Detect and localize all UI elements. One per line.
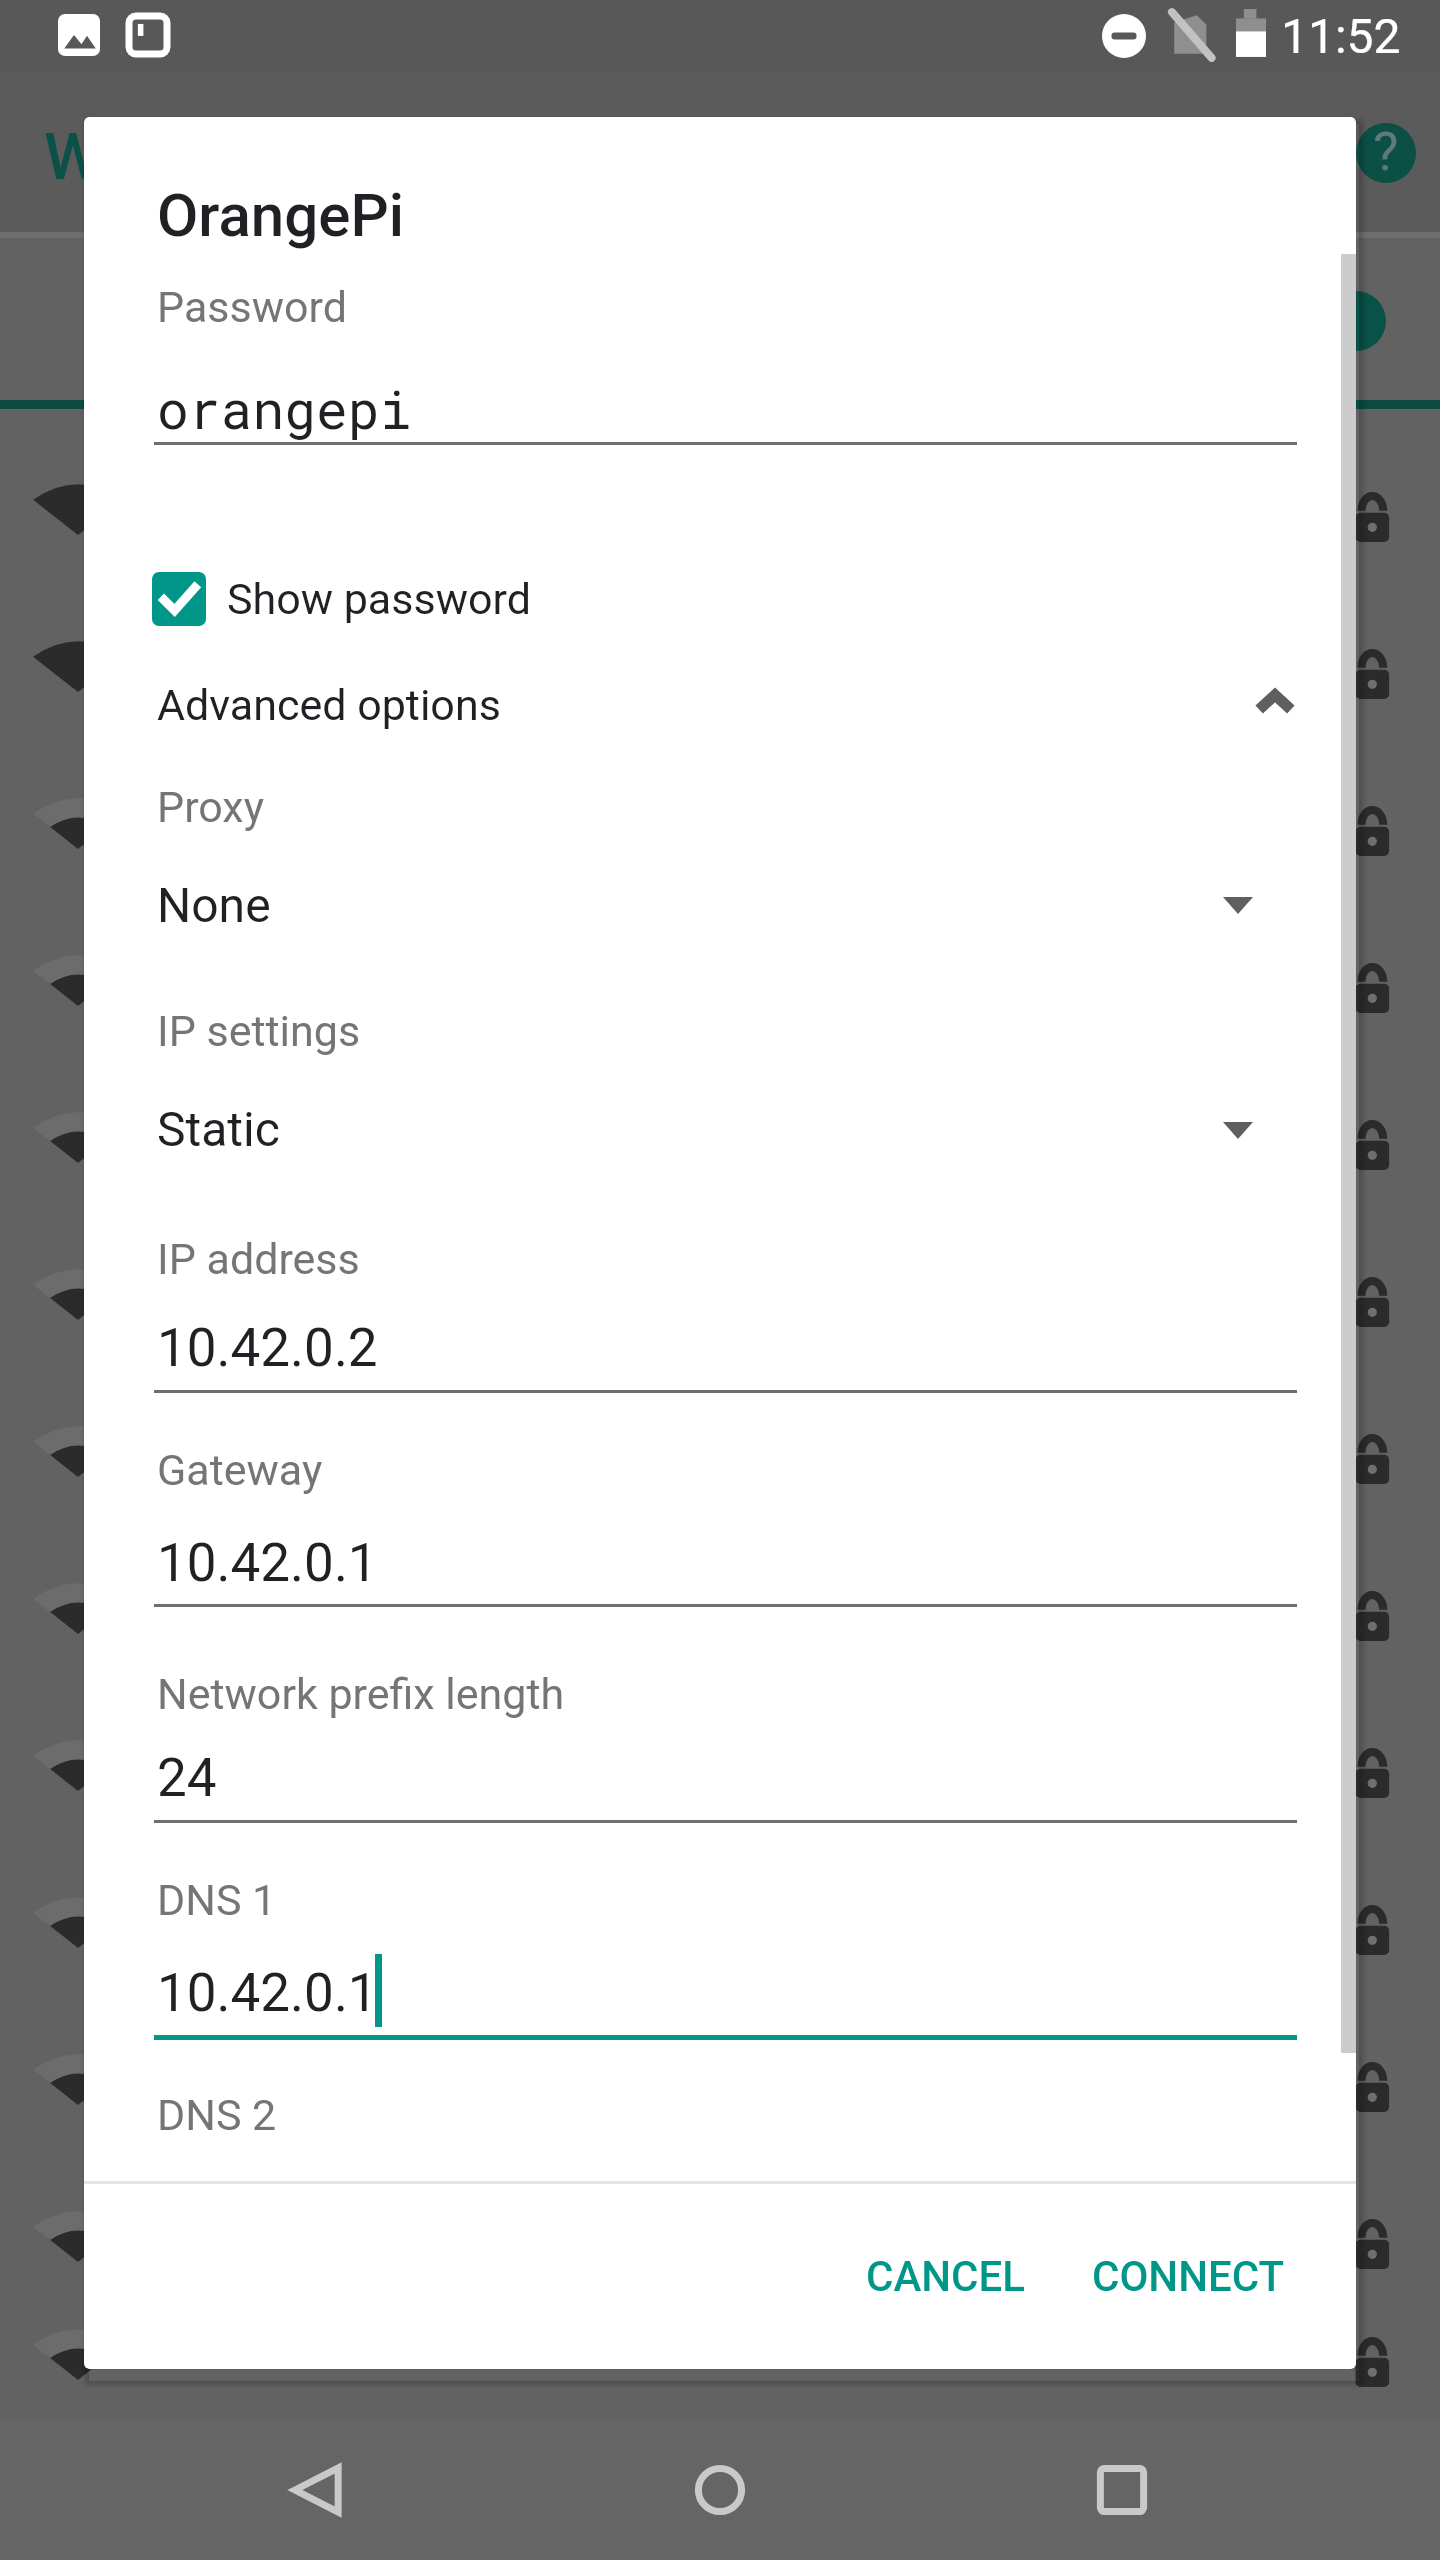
staticText: IP address bbox=[157, 1234, 360, 1284]
staticText: CANCEL bbox=[866, 2252, 1025, 2301]
staticText: 24 bbox=[157, 1747, 217, 1809]
staticText: 10.42.0.1 bbox=[157, 1532, 378, 1594]
staticText: Advanced options bbox=[157, 680, 501, 730]
staticText: Gateway bbox=[157, 1445, 323, 1495]
button[interactable]: CANCEL bbox=[822, 2222, 1068, 2330]
staticText: Network prefix length bbox=[157, 1669, 565, 1719]
staticText: orangepi bbox=[157, 373, 412, 443]
button[interactable]: Show password bbox=[140, 560, 600, 638]
staticText: None bbox=[157, 877, 271, 933]
staticText: Wi-Fi bbox=[44, 119, 193, 195]
staticText: ? bbox=[1373, 123, 1399, 180]
button[interactable]: Home bbox=[640, 2419, 800, 2560]
button[interactable]: CONNECT bbox=[1048, 2222, 1329, 2330]
staticText: Static bbox=[157, 1101, 280, 1157]
button[interactable]: Back bbox=[237, 2419, 397, 2560]
staticText: 10.42.0.1 bbox=[157, 1962, 378, 2024]
staticText: IP settings bbox=[157, 1006, 361, 1056]
staticText: Proxy bbox=[157, 782, 265, 832]
staticText: DNS 2 bbox=[157, 2090, 277, 2140]
staticText: OrangePi bbox=[157, 180, 404, 250]
staticText: Show password bbox=[227, 574, 531, 624]
button[interactable]: Recents bbox=[1042, 2419, 1202, 2560]
button[interactable]: Help bbox=[1356, 123, 1416, 183]
staticText: CONNECT bbox=[1092, 2252, 1285, 2301]
staticText: 11:52 bbox=[1281, 8, 1401, 64]
button[interactable]: Advanced options bbox=[140, 660, 1300, 750]
staticText: 10.42.0.2 bbox=[157, 1317, 378, 1379]
staticText: Password bbox=[157, 282, 347, 332]
staticText: DNS 1 bbox=[157, 1875, 277, 1925]
